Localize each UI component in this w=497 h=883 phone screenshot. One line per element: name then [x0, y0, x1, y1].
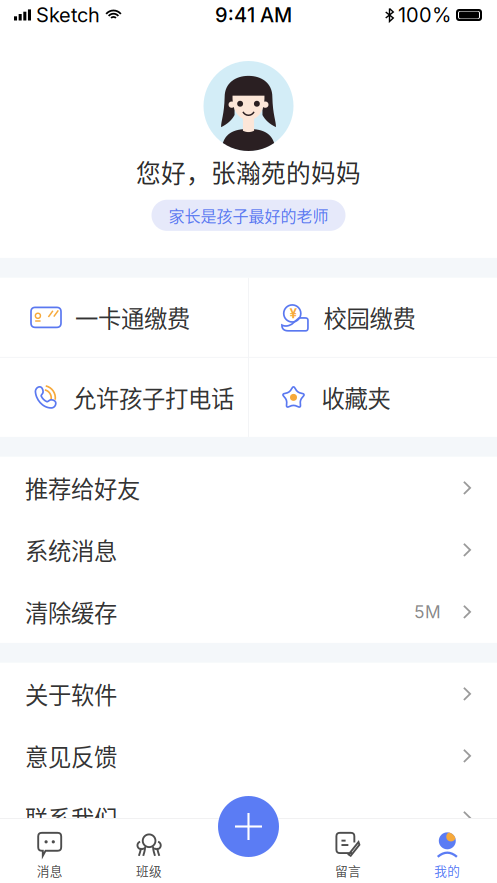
button[interactable]: 清除缓存 — [0, 581, 497, 643]
button[interactable]: 意见反馈 — [0, 725, 497, 787]
staticText: 校园缴费 — [323, 300, 415, 334]
staticText: 清除缓存 — [25, 595, 117, 629]
button[interactable]: 消息 — [0, 832, 99, 880]
staticText: 系统消息 — [25, 533, 117, 567]
button[interactable]: 留言 — [298, 832, 398, 880]
staticText: 我的 — [434, 861, 460, 880]
staticText: 留言 — [335, 861, 361, 880]
staticText: 关于软件 — [25, 677, 117, 711]
button[interactable]: 我的 — [398, 832, 497, 880]
staticText: 收藏夹 — [321, 380, 390, 414]
button[interactable]: 系统消息 — [0, 519, 497, 581]
staticText: 9:41 AM — [215, 3, 292, 27]
staticText: 一卡通缴费 — [75, 300, 190, 334]
button[interactable]: 关于软件 — [0, 663, 497, 725]
staticText: 允许孩子打电话 — [73, 380, 234, 414]
button[interactable]: 新建 — [218, 796, 279, 857]
staticText: 您好，张瀚苑的妈妈 — [136, 154, 361, 190]
button[interactable]: ¥ — [248, 278, 497, 357]
staticText: ¥ — [289, 305, 297, 321]
staticText: 推荐给好友 — [25, 471, 140, 505]
staticText: 100% — [398, 3, 451, 27]
button[interactable]: 联系我们 — [0, 787, 497, 849]
staticText: 班级 — [136, 861, 162, 880]
button[interactable]: 一卡通缴费 — [0, 278, 248, 357]
button[interactable]: 推荐给好友 — [0, 457, 497, 519]
staticText: Sketch — [36, 3, 100, 27]
button[interactable]: 收藏夹 — [248, 358, 497, 437]
staticText: 5M — [414, 601, 441, 622]
button[interactable]: 班级 — [99, 832, 199, 880]
staticText: 消息 — [37, 861, 63, 880]
button[interactable]: 允许孩子打电话 — [0, 358, 248, 437]
staticText: 家长是孩子最好的老师 — [168, 204, 328, 227]
staticText: 联系我们 — [25, 801, 117, 835]
staticText: 意见反馈 — [25, 739, 117, 773]
